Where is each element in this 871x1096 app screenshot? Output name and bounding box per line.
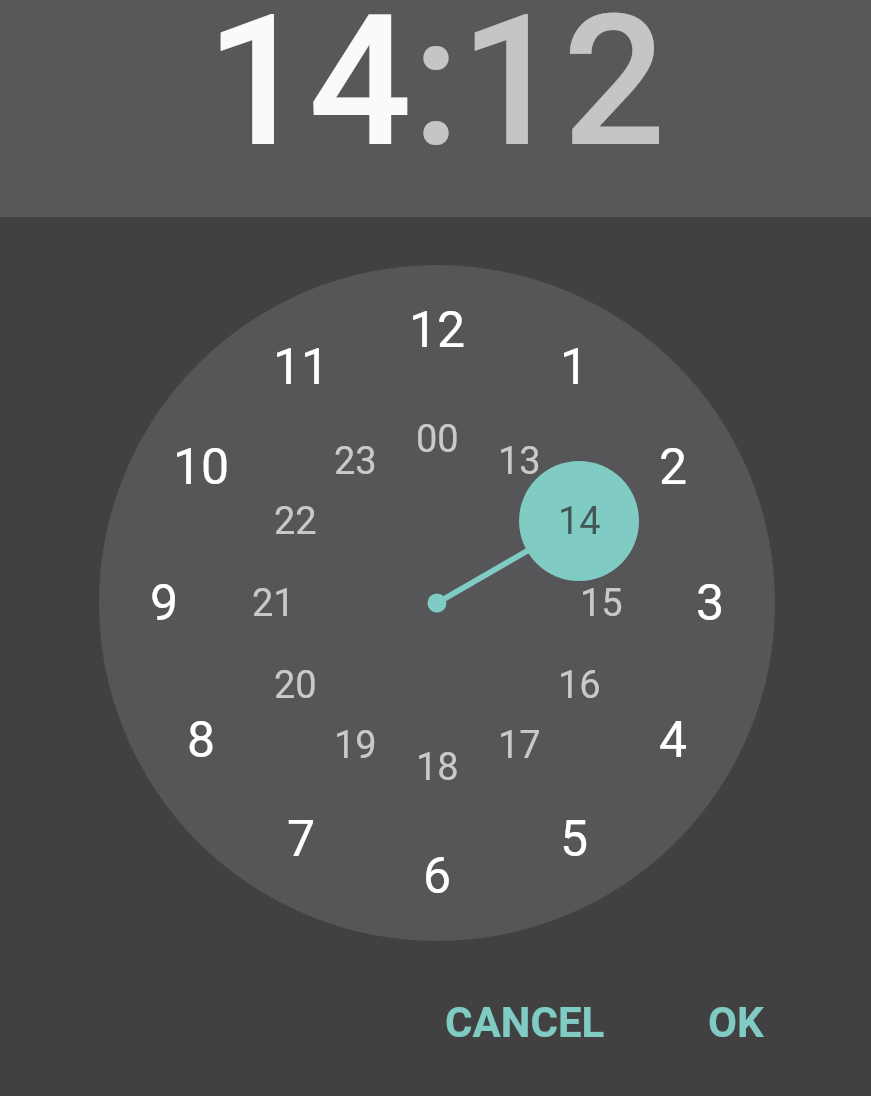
button[interactable]: 6	[377, 831, 497, 921]
button[interactable]: 8	[141, 695, 261, 785]
staticText: 10	[173, 438, 230, 497]
staticText: 16	[558, 663, 601, 708]
staticText: 6	[423, 847, 452, 906]
button[interactable]: 11	[241, 322, 361, 412]
button[interactable]: 17	[459, 700, 579, 790]
button[interactable]: 12	[460, 0, 666, 188]
button[interactable]: 3	[650, 558, 770, 648]
button[interactable]: 4	[613, 695, 733, 785]
staticText: 00	[416, 417, 459, 462]
staticText: 21	[252, 581, 295, 626]
staticText: 11	[273, 338, 330, 397]
staticText: 9	[150, 574, 179, 633]
button[interactable]: 1	[514, 322, 634, 412]
staticText: 5	[560, 810, 589, 869]
button[interactable]: 19	[295, 700, 415, 790]
button[interactable]: 2	[613, 422, 733, 512]
button[interactable]: CANCEL	[410, 986, 640, 1058]
staticText: :	[412, 0, 460, 188]
button[interactable]: 15	[541, 558, 661, 648]
button[interactable]: 9	[104, 558, 224, 648]
staticText: 8	[187, 711, 216, 770]
staticText: 22	[274, 499, 317, 544]
button[interactable]: 14	[206, 0, 412, 188]
staticText: 14	[558, 499, 601, 544]
staticText: 23	[334, 439, 377, 484]
button[interactable]: 00	[377, 394, 497, 484]
button[interactable]: 21	[213, 558, 333, 648]
staticText: 3	[696, 574, 725, 633]
button[interactable]: 20	[235, 640, 355, 730]
staticText: 20	[274, 663, 317, 708]
button[interactable]: 16	[519, 640, 639, 730]
staticText: CANCEL	[445, 998, 605, 1047]
staticText: 1	[560, 338, 589, 397]
staticText: 2	[659, 438, 688, 497]
staticText: 17	[498, 723, 541, 768]
button[interactable]: 5	[514, 794, 634, 884]
button[interactable]: 13	[459, 416, 579, 506]
button[interactable]: 7	[241, 794, 361, 884]
button[interactable]: OK	[676, 986, 796, 1058]
staticText: 12	[409, 301, 466, 360]
staticText: 18	[416, 745, 459, 790]
button[interactable]: 22	[235, 476, 355, 566]
staticText: 7	[287, 810, 316, 869]
button[interactable]: 12	[377, 285, 497, 375]
staticText: OK	[708, 998, 764, 1047]
staticText: 15	[580, 581, 623, 626]
staticText: 4	[659, 711, 688, 770]
staticText: 19	[334, 723, 377, 768]
button[interactable]: 23	[295, 416, 415, 506]
button[interactable]: 14	[519, 476, 639, 566]
button[interactable]: 10	[141, 422, 261, 512]
button[interactable]: 18	[377, 722, 497, 812]
staticText: 13	[498, 439, 541, 484]
